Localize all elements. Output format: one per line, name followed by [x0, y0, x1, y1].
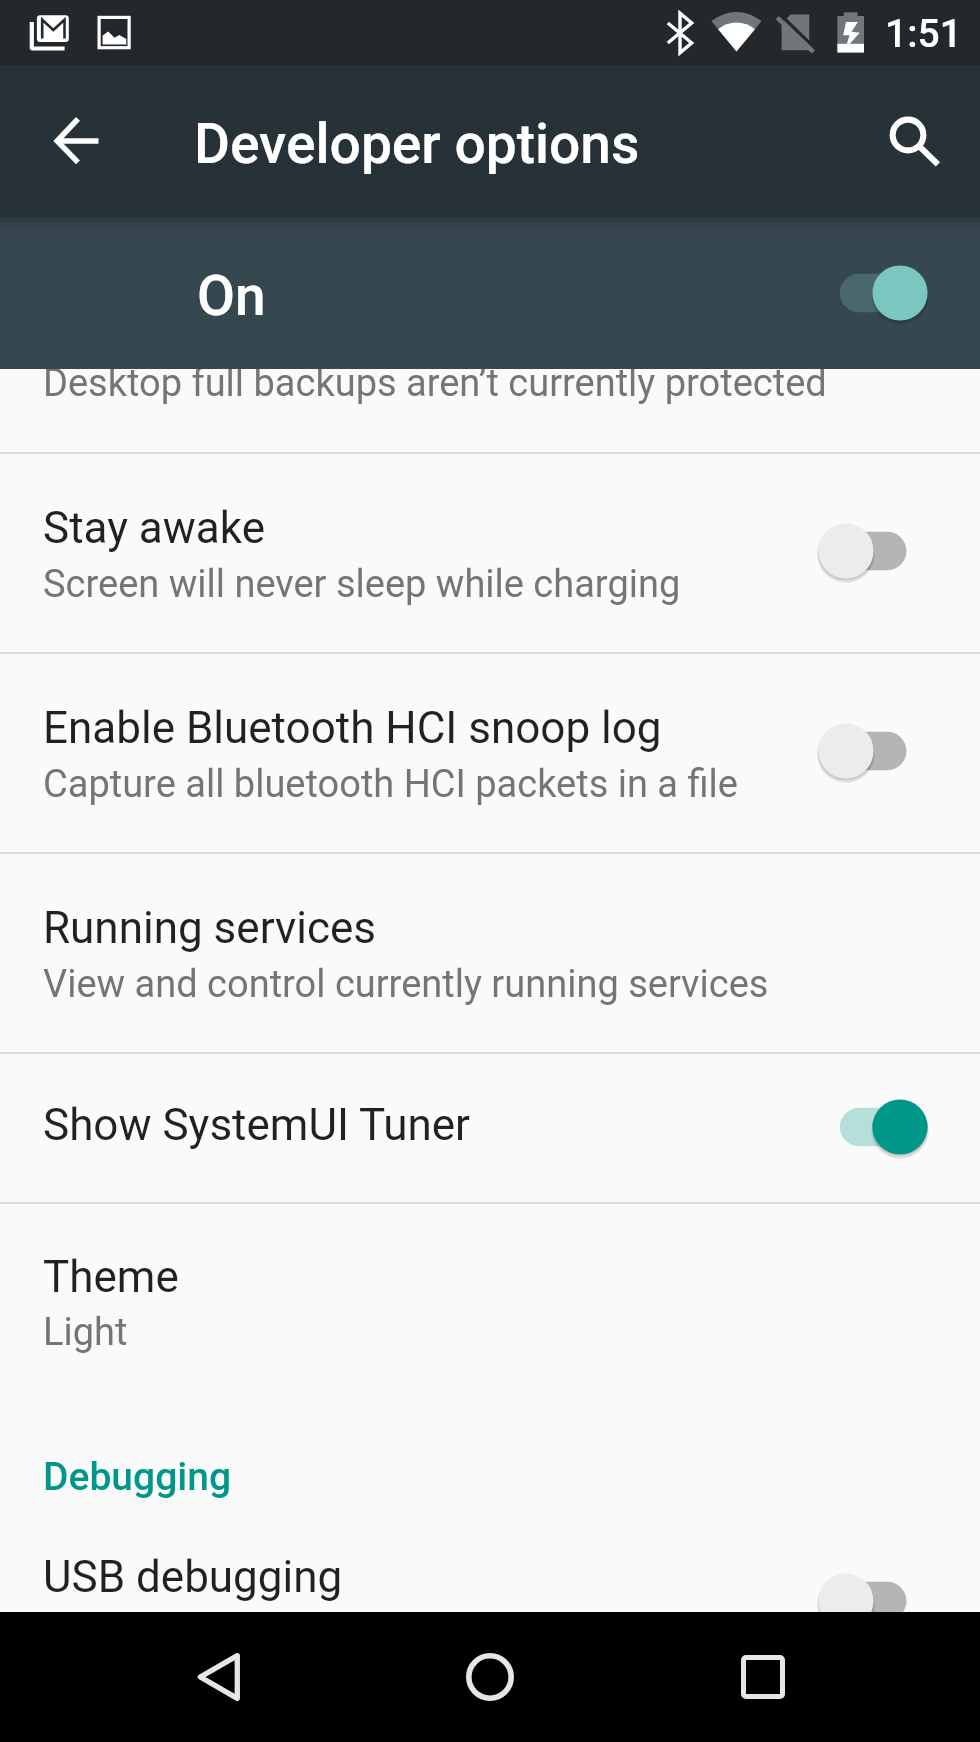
- button[interactable]: Navigate up: [32, 97, 120, 185]
- button[interactable]: Recent apps: [703, 1617, 823, 1737]
- staticText: Light: [43, 1310, 128, 1355]
- staticText: Show SystemUI Tuner: [43, 1099, 470, 1151]
- button[interactable]: [0, 1202, 980, 1402]
- button[interactable]: Search: [864, 91, 952, 179]
- button[interactable]: [0, 452, 980, 652]
- staticText: Screen will never sleep while charging: [43, 562, 681, 607]
- button[interactable]: On: [0, 217, 980, 369]
- staticText: On: [197, 264, 266, 328]
- staticText: Developer options: [194, 112, 640, 176]
- button[interactable]: [0, 1501, 980, 1701]
- staticText: View and control currently running servi…: [43, 962, 769, 1007]
- staticText: Debug mode when USB is connected: [43, 1611, 664, 1656]
- staticText: 1:51: [885, 11, 962, 57]
- staticText: USB debugging: [43, 1551, 343, 1603]
- staticText: Theme: [43, 1251, 179, 1303]
- button[interactable]: Back: [158, 1617, 278, 1737]
- staticText: Desktop full backups aren’t currently pr…: [43, 361, 827, 406]
- staticText: Enable Bluetooth HCI snoop log: [43, 702, 662, 754]
- staticText: Capture all bluetooth HCI packets in a f…: [43, 762, 738, 807]
- button[interactable]: [0, 1052, 980, 1202]
- button[interactable]: [0, 652, 980, 852]
- staticText: Running services: [43, 902, 377, 954]
- button[interactable]: Home: [430, 1617, 550, 1737]
- staticText: Debugging: [43, 1454, 232, 1500]
- button[interactable]: [0, 252, 980, 452]
- staticText: Backup passwords: [43, 301, 414, 353]
- staticText: Stay awake: [43, 502, 265, 554]
- button[interactable]: [0, 852, 980, 1052]
